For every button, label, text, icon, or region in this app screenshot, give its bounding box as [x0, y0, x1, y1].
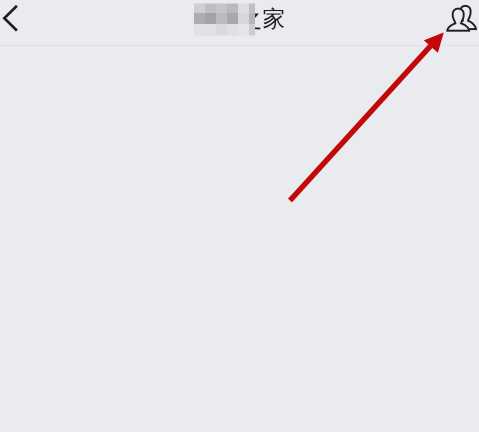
- button[interactable]: Contacts: [439, 0, 479, 45]
- staticText: 汽车之家: [193, 5, 285, 33]
- button[interactable]: Back: [0, 0, 34, 45]
